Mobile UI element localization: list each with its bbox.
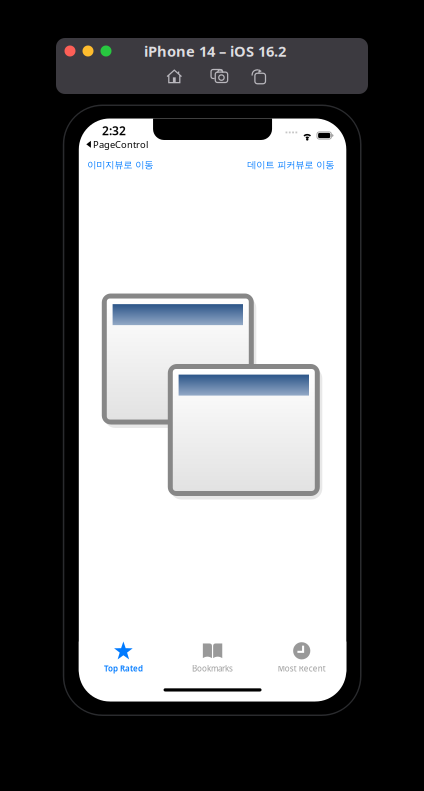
button[interactable]: Rotate [245, 65, 271, 87]
staticText: 데이트 피커뷰로 이동 [247, 159, 334, 171]
button[interactable]: Close [64, 45, 75, 56]
button[interactable]: Minimise [82, 45, 93, 56]
button[interactable]: Zoom [100, 45, 111, 56]
button[interactable]: 이미지뷰로 이동 [87, 156, 153, 174]
button[interactable]: Top Rated [79, 641, 168, 672]
staticText: Top Rated [104, 663, 143, 674]
button[interactable]: Screenshot [207, 65, 233, 87]
staticText: 2:32 [102, 122, 126, 138]
staticText: 이미지뷰로 이동 [87, 159, 153, 171]
button[interactable]: Most Recent [257, 641, 346, 672]
staticText: PageControl [93, 138, 148, 150]
button[interactable]: 데이트 피커뷰로 이동 [247, 156, 334, 174]
staticText: iPhone 14 – iOS 16.2 [144, 41, 286, 61]
staticText: Bookmarks [192, 663, 233, 674]
button[interactable]: Bookmarks [168, 641, 257, 672]
button[interactable]: Home [161, 65, 187, 87]
staticText: Most Recent [278, 663, 326, 674]
